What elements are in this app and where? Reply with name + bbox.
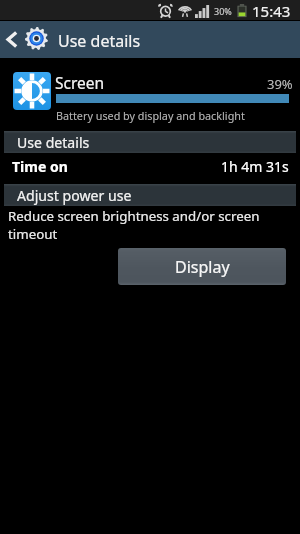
button[interactable]: Adjust power use (4, 184, 296, 206)
button[interactable]: Display (118, 248, 286, 285)
staticText: Battery used by display and backlight (56, 108, 245, 123)
button[interactable]: Use details (4, 131, 296, 153)
staticText: Time on (12, 157, 68, 176)
staticText: 30% (214, 5, 232, 17)
staticText: Display (175, 256, 230, 278)
staticText: 15:43 (252, 1, 291, 21)
staticText: Reduce screen brightness and/or screen t… (8, 207, 260, 243)
staticText: 1h 4m 31s (221, 157, 289, 176)
staticText: 39% (267, 75, 293, 93)
staticText: Use details (58, 30, 141, 52)
staticText: Use details (17, 133, 90, 152)
staticText: Adjust power use (17, 186, 132, 205)
other: Back (5, 31, 19, 48)
staticText: Screen (55, 72, 105, 93)
button[interactable]: Back (0, 21, 300, 58)
